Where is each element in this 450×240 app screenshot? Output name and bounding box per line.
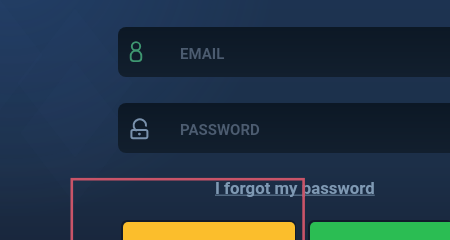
button[interactable] (310, 222, 450, 240)
button[interactable]: I forgot my password (211, 176, 379, 200)
other: Email (128, 40, 144, 64)
staticText: PASSWORD (180, 121, 260, 139)
button[interactable]: Email (118, 27, 450, 77)
other: Password (130, 116, 150, 140)
staticText: EMAIL (180, 45, 225, 63)
button[interactable] (123, 222, 295, 240)
staticText: I forgot my password (215, 178, 375, 198)
button[interactable]: Password (118, 103, 450, 153)
